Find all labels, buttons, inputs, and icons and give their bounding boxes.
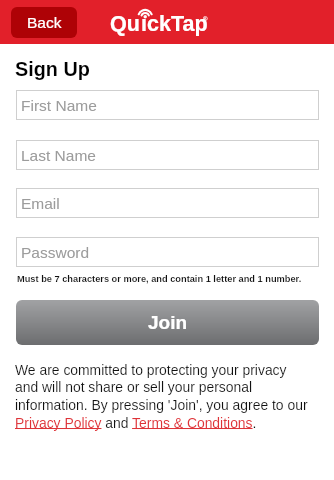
staticText: Qu: [110, 12, 140, 36]
button[interactable]: First Name: [16, 90, 319, 120]
button[interactable]: Email: [16, 188, 319, 218]
staticText: We are committed to protecting your priv…: [15, 362, 308, 431]
staticText: Must be 7 characters or more, and contai…: [17, 274, 302, 284]
staticText: Email: [21, 195, 60, 212]
staticText: Join: [148, 312, 188, 333]
staticText: Sign Up: [15, 58, 90, 80]
button[interactable]: Last Name: [16, 140, 319, 170]
staticText: ®: [203, 16, 208, 23]
staticText: Last Name: [21, 147, 96, 164]
staticText: ıckTap: [141, 12, 208, 36]
staticText: First Name: [21, 97, 97, 114]
staticText: Back: [27, 14, 62, 31]
button[interactable]: Back: [11, 7, 77, 38]
staticText: Password: [21, 244, 90, 261]
button[interactable]: Password: [16, 237, 319, 267]
button[interactable]: Join: [16, 300, 319, 345]
